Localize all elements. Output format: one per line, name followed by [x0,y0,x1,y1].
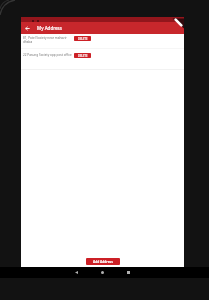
staticText: Add Address [93,260,113,264]
button[interactable]: DELETE [74,53,91,58]
staticText: My Address [37,25,62,31]
button[interactable]: Navigate back [21,22,33,34]
button[interactable]: 22 Pasung Society opp post office [21,49,184,69]
button[interactable]: Back [71,267,82,278]
button[interactable]: Add Address [86,258,120,265]
button[interactable]: Edit address [172,17,184,29]
button[interactable]: DELETE [74,36,91,41]
button[interactable]: Home [97,267,108,278]
staticText: 22 Pasung Society opp post office [23,53,72,57]
staticText: DELETE [78,37,88,41]
button[interactable]: 81, Patel Society near mahavir dhaba [21,34,184,48]
staticText: DELETE [78,54,88,58]
button[interactable]: Recent apps [123,267,134,278]
staticText: 81, Patel Society near mahavir dhaba [23,36,73,44]
